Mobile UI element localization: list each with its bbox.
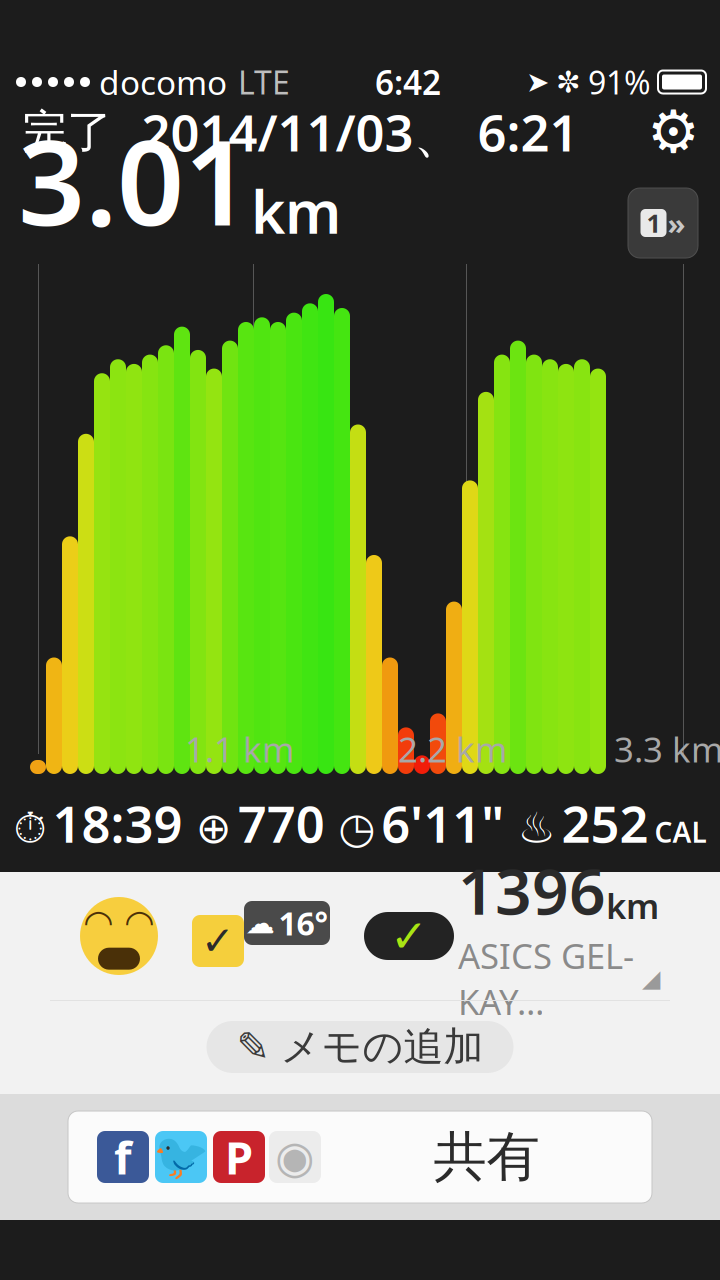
staticText: ◢ — [642, 965, 660, 992]
staticText: 6'11" — [381, 789, 504, 857]
staticText: ✓ — [390, 910, 428, 962]
staticText: docomo — [99, 60, 227, 104]
staticText: P — [225, 1127, 253, 1187]
button[interactable]: Voice feedback — [628, 188, 698, 258]
staticText: 252 — [562, 789, 649, 857]
staticText: 完了 — [22, 104, 112, 160]
staticText: LTE — [238, 61, 290, 103]
staticText: ◷ — [338, 804, 375, 852]
staticText: 16° — [278, 902, 328, 944]
button[interactable]: Settings — [631, 95, 716, 169]
button[interactable]: Weather and terrain — [192, 901, 330, 971]
staticText: km — [606, 882, 659, 928]
staticText: 2014/11/03、 6:21 — [141, 98, 578, 166]
staticText: ◉ — [275, 1131, 315, 1183]
staticText: メモの追加 — [280, 1022, 483, 1071]
button[interactable]: Facebook — [97, 1127, 149, 1187]
button[interactable]: Instagram — [269, 1131, 321, 1183]
staticText: ✎ — [236, 1024, 270, 1070]
staticText: ASICS GEL-KAY… — [458, 932, 634, 1025]
button[interactable]: Shoes — [364, 847, 660, 1025]
staticText: km — [251, 172, 341, 250]
staticText: 91% — [588, 61, 651, 103]
staticText: 2.2 km — [398, 726, 507, 772]
staticText: 1 — [646, 206, 660, 240]
staticText: ♨ — [518, 804, 556, 852]
staticText: ✼ — [556, 65, 581, 99]
button[interactable]: Pinterest — [213, 1127, 265, 1187]
staticText: ⚙ — [647, 99, 700, 165]
button[interactable]: ✎ — [206, 1021, 513, 1073]
staticText: 18:39 — [52, 789, 182, 857]
staticText: ☁ — [245, 906, 274, 940]
button[interactable]: Twitter — [153, 1131, 209, 1183]
staticText: ⏱ — [13, 809, 46, 851]
staticText: 1396 — [458, 847, 606, 932]
staticText: ⊕ — [196, 804, 232, 852]
staticText: » — [667, 203, 685, 242]
staticText: ◠ — [126, 902, 153, 942]
button[interactable]: Mood — [80, 897, 158, 975]
staticText: 770 — [238, 789, 325, 857]
staticText: ➤ — [526, 66, 549, 98]
staticText: 1.1 km — [185, 726, 294, 772]
button[interactable]: 共有 — [393, 1108, 579, 1206]
staticText: 3.01 — [18, 102, 251, 258]
button[interactable]: 完了 — [4, 96, 130, 168]
staticText: 3.3 km — [614, 726, 720, 772]
staticText: 共有 — [433, 1124, 539, 1190]
staticText: f — [114, 1127, 132, 1187]
staticText: ✓ — [201, 918, 235, 964]
staticText: 6:42 — [375, 60, 441, 104]
staticText: ◠ — [85, 902, 112, 942]
staticText: 🐦 — [153, 1131, 209, 1183]
staticText: CAL — [655, 813, 707, 850]
